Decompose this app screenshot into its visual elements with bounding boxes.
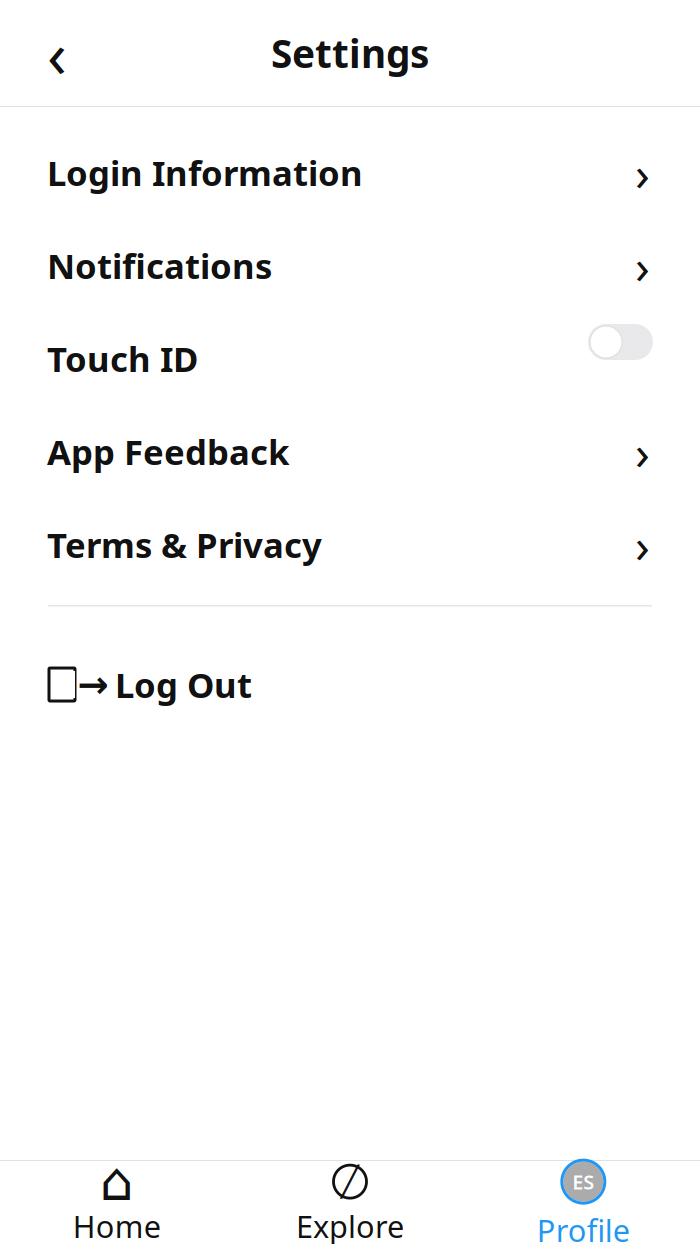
button[interactable]: Touch ID <box>0 312 700 405</box>
staticText: Notifications <box>47 242 272 288</box>
button[interactable]: Login Information <box>0 126 700 219</box>
button[interactable]: ES <box>467 1149 700 1244</box>
staticText: App Feedback <box>47 428 289 474</box>
staticText: Settings <box>271 27 429 79</box>
staticText: ╱ <box>341 1165 359 1198</box>
button[interactable]: → <box>0 646 700 722</box>
staticText: ⌂ <box>100 1151 134 1212</box>
staticText: Home <box>73 1206 161 1244</box>
button[interactable]: App Feedback <box>0 405 700 498</box>
staticText: Login Information <box>47 149 363 195</box>
button[interactable]: Notifications <box>0 219 700 312</box>
staticText: Explore <box>296 1206 404 1244</box>
staticText: → <box>77 663 108 706</box>
button[interactable]: Back <box>34 24 80 82</box>
staticText: ‹ <box>47 10 67 95</box>
staticText: ES <box>572 1168 594 1195</box>
staticText: Touch ID <box>47 335 198 381</box>
button[interactable]: ╱ <box>233 1153 467 1244</box>
staticText: Profile <box>537 1210 630 1244</box>
staticText: Log Out <box>115 661 252 707</box>
button[interactable]: Terms & Privacy <box>0 498 700 591</box>
staticText: › <box>635 513 650 576</box>
staticText: Terms & Privacy <box>47 521 322 567</box>
staticText: › <box>635 234 650 297</box>
staticText: › <box>635 420 650 483</box>
button[interactable]: ⌂ <box>0 1153 233 1244</box>
staticText: › <box>635 141 650 204</box>
